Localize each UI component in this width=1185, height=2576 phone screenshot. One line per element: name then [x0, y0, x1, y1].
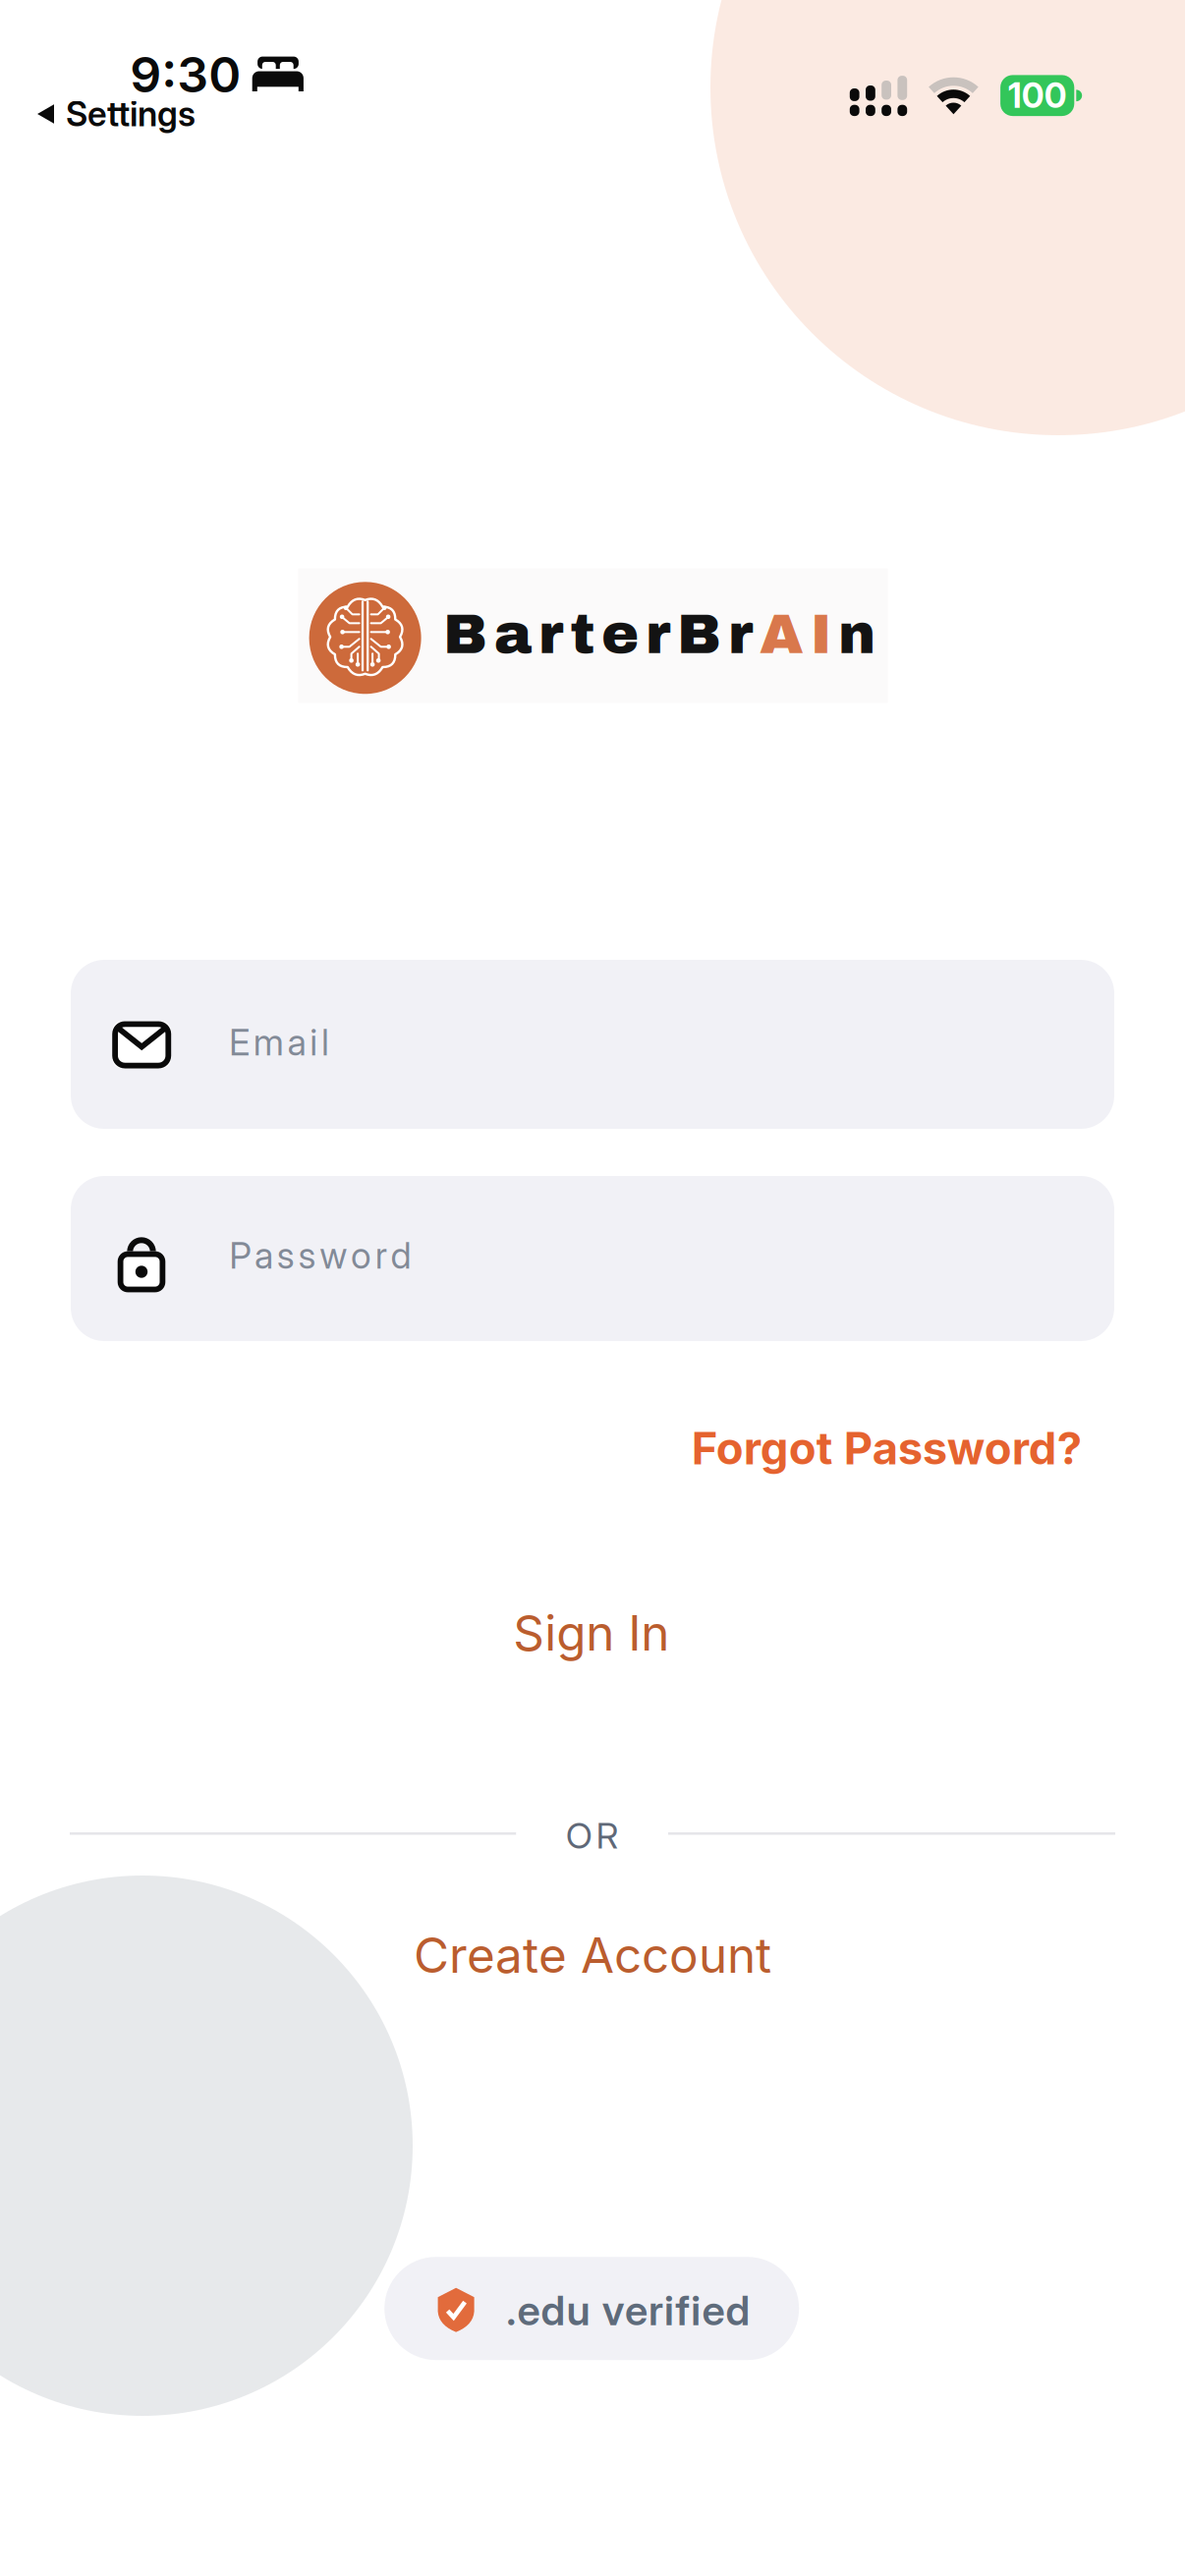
staticText: I: [811, 604, 831, 665]
button[interactable]: Password: [71, 1176, 1114, 1341]
staticText: Email: [229, 1021, 329, 1064]
staticText: R: [596, 1814, 618, 1857]
staticText: n: [838, 604, 875, 665]
button[interactable]: Settings: [37, 93, 196, 134]
button[interactable]: Sign In: [474, 1588, 709, 1678]
staticText: .edu verified: [506, 2285, 750, 2335]
staticText: r: [728, 604, 753, 665]
staticText: O: [566, 1814, 592, 1857]
staticText: Sign In: [513, 1604, 669, 1662]
staticText: 100: [1008, 75, 1067, 116]
staticText: B: [443, 604, 487, 665]
staticText: Password: [229, 1234, 411, 1277]
staticText: r: [646, 604, 670, 665]
button[interactable]: Email: [71, 960, 1114, 1129]
staticText: e: [601, 604, 639, 665]
staticText: Create Account: [414, 1926, 771, 1984]
button[interactable]: Create Account: [374, 1910, 811, 2000]
button[interactable]: Forgot Password?: [691, 1411, 1082, 1485]
staticText: B: [677, 604, 721, 665]
staticText: A: [760, 604, 804, 665]
staticText: r: [538, 604, 563, 665]
staticText: t: [570, 604, 594, 665]
staticText: a: [494, 604, 532, 665]
staticText: 9:30: [130, 45, 241, 104]
staticText: Forgot Password?: [691, 1421, 1082, 1475]
staticText: Settings: [66, 93, 196, 134]
